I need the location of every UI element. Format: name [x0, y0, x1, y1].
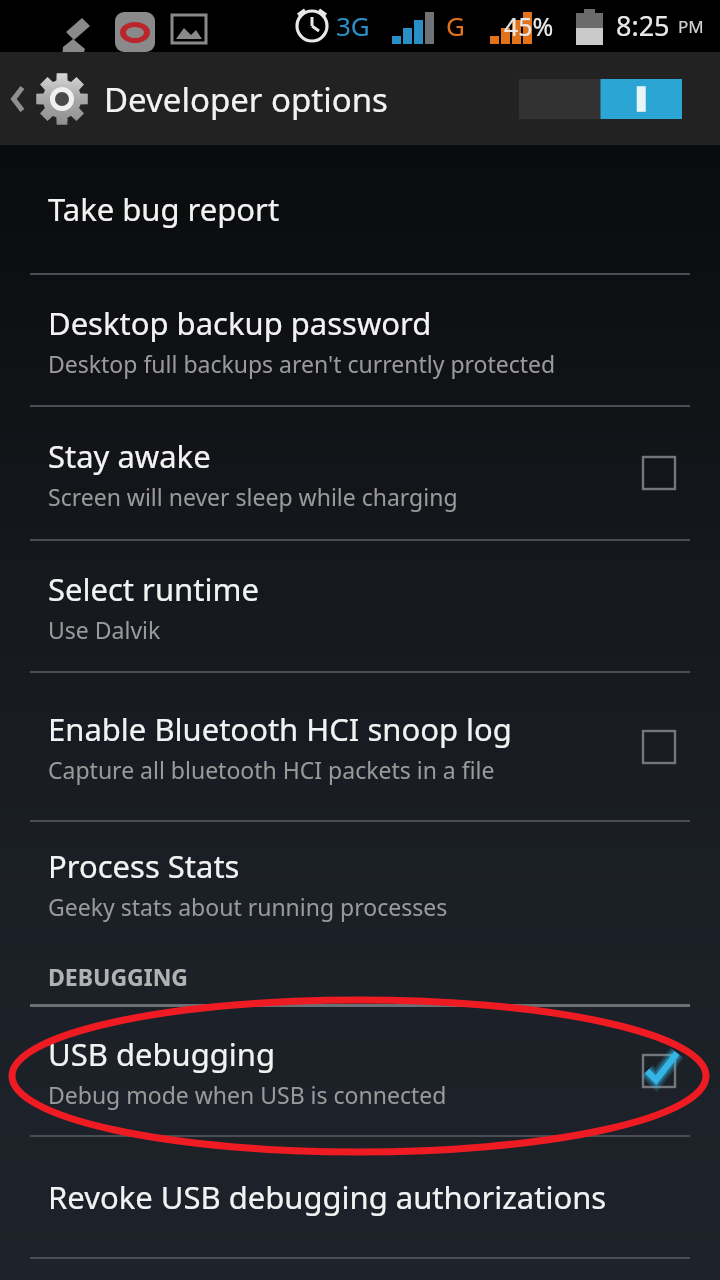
staticText: 3G — [336, 8, 370, 43]
staticText: DEBUGGING — [48, 961, 189, 992]
button[interactable]: Process Stats — [0, 822, 720, 944]
staticText: 8:25 — [616, 7, 670, 44]
button[interactable]: Revoke USB debugging authorizations — [0, 1137, 720, 1257]
staticText: USB debugging — [48, 1033, 276, 1075]
staticText: Developer options — [104, 77, 388, 122]
button[interactable]: Take bug report — [0, 145, 720, 273]
button[interactable]: Enable Bluetooth HCI snoop log — [0, 673, 720, 820]
staticText: G — [446, 8, 465, 43]
button[interactable]: Desktop backup password — [0, 275, 720, 405]
button[interactable]: USB debugging — [0, 1007, 720, 1135]
button[interactable]: Stay awake — [0, 407, 720, 539]
button[interactable]: USB debugging — [626, 1038, 692, 1104]
staticText: Revoke USB debugging authorizations — [48, 1176, 607, 1218]
staticText: Geeky stats about running processes — [48, 891, 448, 922]
staticText: Select runtime — [48, 568, 259, 610]
staticText: Debug mode when USB is connected — [48, 1079, 447, 1110]
staticText: Stay awake — [48, 435, 211, 477]
staticText: Use Dalvik — [48, 614, 161, 645]
staticText: Desktop full backups aren't currently pr… — [48, 348, 556, 379]
button[interactable]: Toggle developer options — [513, 73, 688, 125]
button[interactable]: Enable Bluetooth HCI snoop log — [626, 714, 692, 780]
staticText: Process Stats — [48, 845, 240, 887]
staticText: Enable Bluetooth HCI snoop log — [48, 708, 512, 750]
button[interactable]: Stay awake — [626, 440, 692, 506]
staticText: Take bug report — [48, 188, 280, 230]
staticText: Desktop backup password — [48, 302, 432, 344]
staticText: 45% — [504, 9, 554, 43]
button[interactable]: Developer options — [0, 71, 400, 127]
button[interactable]: Select runtime — [0, 541, 720, 671]
staticText: PM — [678, 15, 704, 38]
staticText: Screen will never sleep while charging — [48, 481, 458, 512]
staticText: Capture all bluetooth HCI packets in a f… — [48, 754, 495, 785]
